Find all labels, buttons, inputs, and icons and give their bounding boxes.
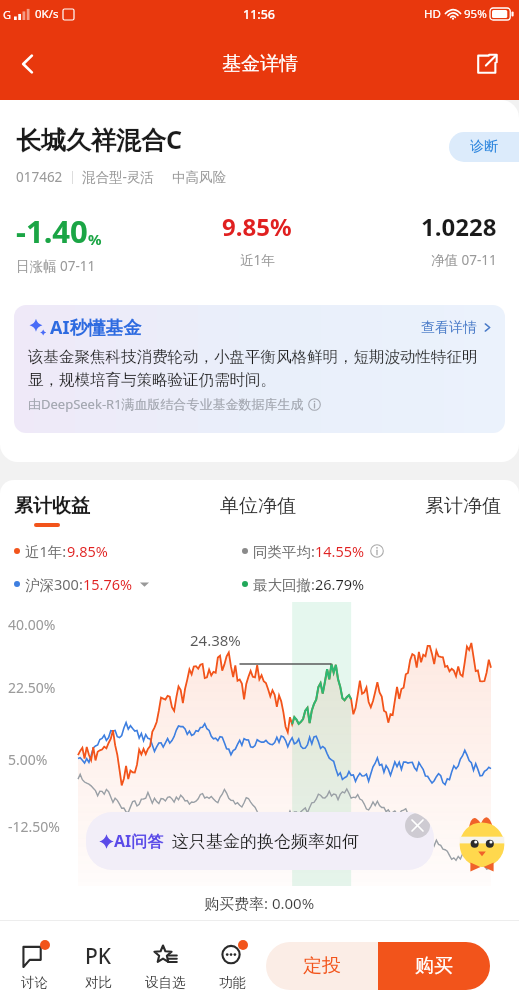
button[interactable]: 设自选 — [130, 941, 200, 991]
button[interactable]: 累计收益 — [14, 494, 177, 527]
staticText: 混合型-灵活 — [82, 168, 154, 186]
staticText: 购买费率: 0.00% — [204, 893, 315, 913]
staticText: 0K/s — [35, 6, 59, 22]
staticText: 95% — [464, 6, 487, 22]
staticText: 累计收益 — [14, 494, 90, 518]
staticText: 9.85% — [222, 210, 292, 243]
staticText: 中高风险 — [172, 169, 226, 186]
staticText: 26.79% — [315, 574, 365, 594]
button[interactable]: Info — [370, 544, 384, 558]
staticText: 由DeepSeek-R1满血版结合专业基金数据库生成 — [28, 395, 304, 413]
staticText: 讨论 — [21, 974, 48, 991]
staticText: 11:56 — [243, 6, 276, 23]
button[interactable]: 沪深300: — [14, 574, 242, 594]
staticText: % — [88, 229, 102, 249]
staticText: 9.85% — [67, 541, 108, 561]
staticText: 单位净值 — [220, 494, 296, 518]
button[interactable]: 定投 — [266, 942, 378, 990]
button[interactable]: Close — [405, 813, 430, 838]
button[interactable]: 累计净值 — [339, 494, 501, 527]
staticText: 功能 — [219, 974, 246, 991]
staticText: 14.55% — [315, 541, 365, 561]
button[interactable]: 单位净值 — [177, 494, 339, 527]
staticText: 最大回撤: — [253, 574, 315, 594]
staticText: 查看详情 — [421, 319, 477, 337]
staticText: 22.50% — [8, 678, 56, 697]
staticText: 5.00% — [8, 750, 48, 769]
staticText: AI问答 — [114, 830, 164, 852]
button[interactable]: 功能 — [200, 941, 264, 991]
staticText: 沪深300: — [25, 574, 83, 594]
staticText: -1.40 — [16, 210, 88, 252]
staticText: 这只基金的换仓频率如何 — [172, 831, 359, 852]
button[interactable]: Back — [4, 40, 52, 88]
staticText: 40.00% — [8, 615, 56, 634]
staticText: 15.76% — [83, 574, 133, 594]
staticText: 长城久祥混合C — [16, 122, 183, 156]
button[interactable]: Share — [465, 42, 509, 86]
staticText: PK — [85, 942, 112, 971]
button[interactable]: PK — [66, 941, 130, 991]
staticText: 近1年: — [25, 541, 67, 561]
staticText: 日涨幅 07-11 — [16, 257, 96, 275]
staticText: AI秒懂基金 — [50, 315, 142, 340]
staticText: 设自选 — [145, 974, 186, 991]
staticText: 017462 — [16, 168, 63, 186]
staticText: 24.38% — [190, 630, 241, 650]
staticText: 对比 — [85, 974, 112, 991]
staticText: 累计净值 — [425, 494, 501, 518]
staticText: 净值 07-11 — [431, 251, 497, 269]
staticText: 购买 — [415, 954, 453, 978]
button[interactable]: AI问答 — [86, 812, 434, 870]
button[interactable]: 诊断 — [449, 132, 519, 162]
staticText: 近1年 — [240, 251, 275, 269]
staticText: G — [3, 7, 12, 22]
button[interactable]: 讨论 — [2, 941, 66, 991]
staticText: -12.50% — [8, 817, 60, 836]
staticText: HD — [424, 6, 441, 22]
button[interactable]: AI秒懂基金 — [14, 305, 505, 433]
staticText: 1.0228 — [421, 210, 497, 243]
staticText: 该基金聚焦科技消费轮动，小盘平衡风格鲜明，短期波动性特征明显，规模培育与策略验证… — [28, 347, 493, 390]
button[interactable]: 购买 — [378, 942, 490, 990]
staticText: 基金详情 — [222, 52, 298, 76]
staticText: 定投 — [303, 954, 341, 978]
staticText: 诊断 — [470, 138, 498, 156]
staticText: 同类平均: — [253, 541, 315, 561]
